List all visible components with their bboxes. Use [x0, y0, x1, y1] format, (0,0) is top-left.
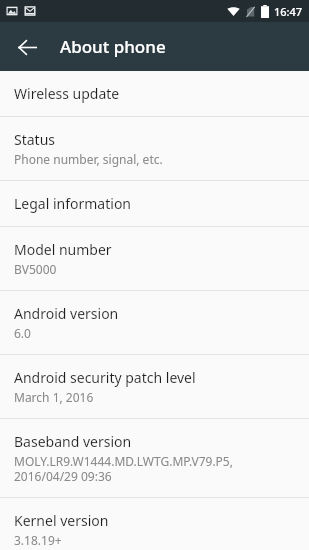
- button[interactable]: Kernel version: [0, 498, 309, 550]
- button[interactable]: Wireless update: [0, 71, 309, 116]
- button[interactable]: Legal information: [0, 181, 309, 226]
- button[interactable]: Model number: [0, 227, 309, 290]
- staticText: MOLY.LR9.W1444.MD.LWTG.MP.V79.P5, 2016/0…: [14, 453, 233, 484]
- staticText: Phone number, signal, etc.: [14, 151, 163, 167]
- button[interactable]: Status: [0, 117, 309, 180]
- staticText: Baseband version: [14, 432, 132, 451]
- staticText: About phone: [60, 35, 166, 58]
- staticText: Android security patch level: [14, 368, 196, 387]
- staticText: 3.18.19+ release@release26 #1: [14, 532, 138, 550]
- staticText: BV5000: [14, 261, 57, 277]
- staticText: Model number: [14, 240, 112, 259]
- staticText: 6.0: [14, 325, 31, 341]
- staticText: Wireless update: [14, 84, 120, 103]
- button[interactable]: Android security patch level: [0, 355, 309, 418]
- button[interactable]: Android version: [0, 291, 309, 354]
- staticText: Kernel version: [14, 511, 109, 530]
- staticText: Legal information: [14, 194, 132, 213]
- button[interactable]: Baseband version: [0, 419, 309, 497]
- staticText: Android version: [14, 304, 119, 323]
- staticText: 16:47: [274, 4, 303, 19]
- button[interactable]: Navigate up: [10, 30, 44, 64]
- staticText: Status: [14, 130, 56, 149]
- staticText: March 1, 2016: [14, 389, 94, 405]
